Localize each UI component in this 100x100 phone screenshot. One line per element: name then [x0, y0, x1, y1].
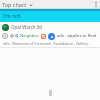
- staticText: Top chart: [2, 1, 27, 8]
- staticText: ads - applies to Real: [57, 33, 97, 39]
- staticText: Neighbor: [20, 33, 39, 39]
- button[interactable]: Top chart: [0, 1, 35, 8]
- button[interactable]: More options: [91, 0, 100, 9]
- button[interactable]: I'm rich: [0, 11, 100, 22]
- staticText: I'm rich: [3, 13, 21, 20]
- button[interactable]: Download: [48, 33, 55, 40]
- staticText: Opal Watch 3d: [11, 24, 42, 30]
- button[interactable]: Opal Watch 3d: [0, 23, 100, 31]
- button[interactable]: Chart: [41, 34, 46, 39]
- staticText: info - Moments of Corrected - Foundation…: [3, 41, 98, 46]
- button[interactable]: Neighbor: [0, 32, 100, 40]
